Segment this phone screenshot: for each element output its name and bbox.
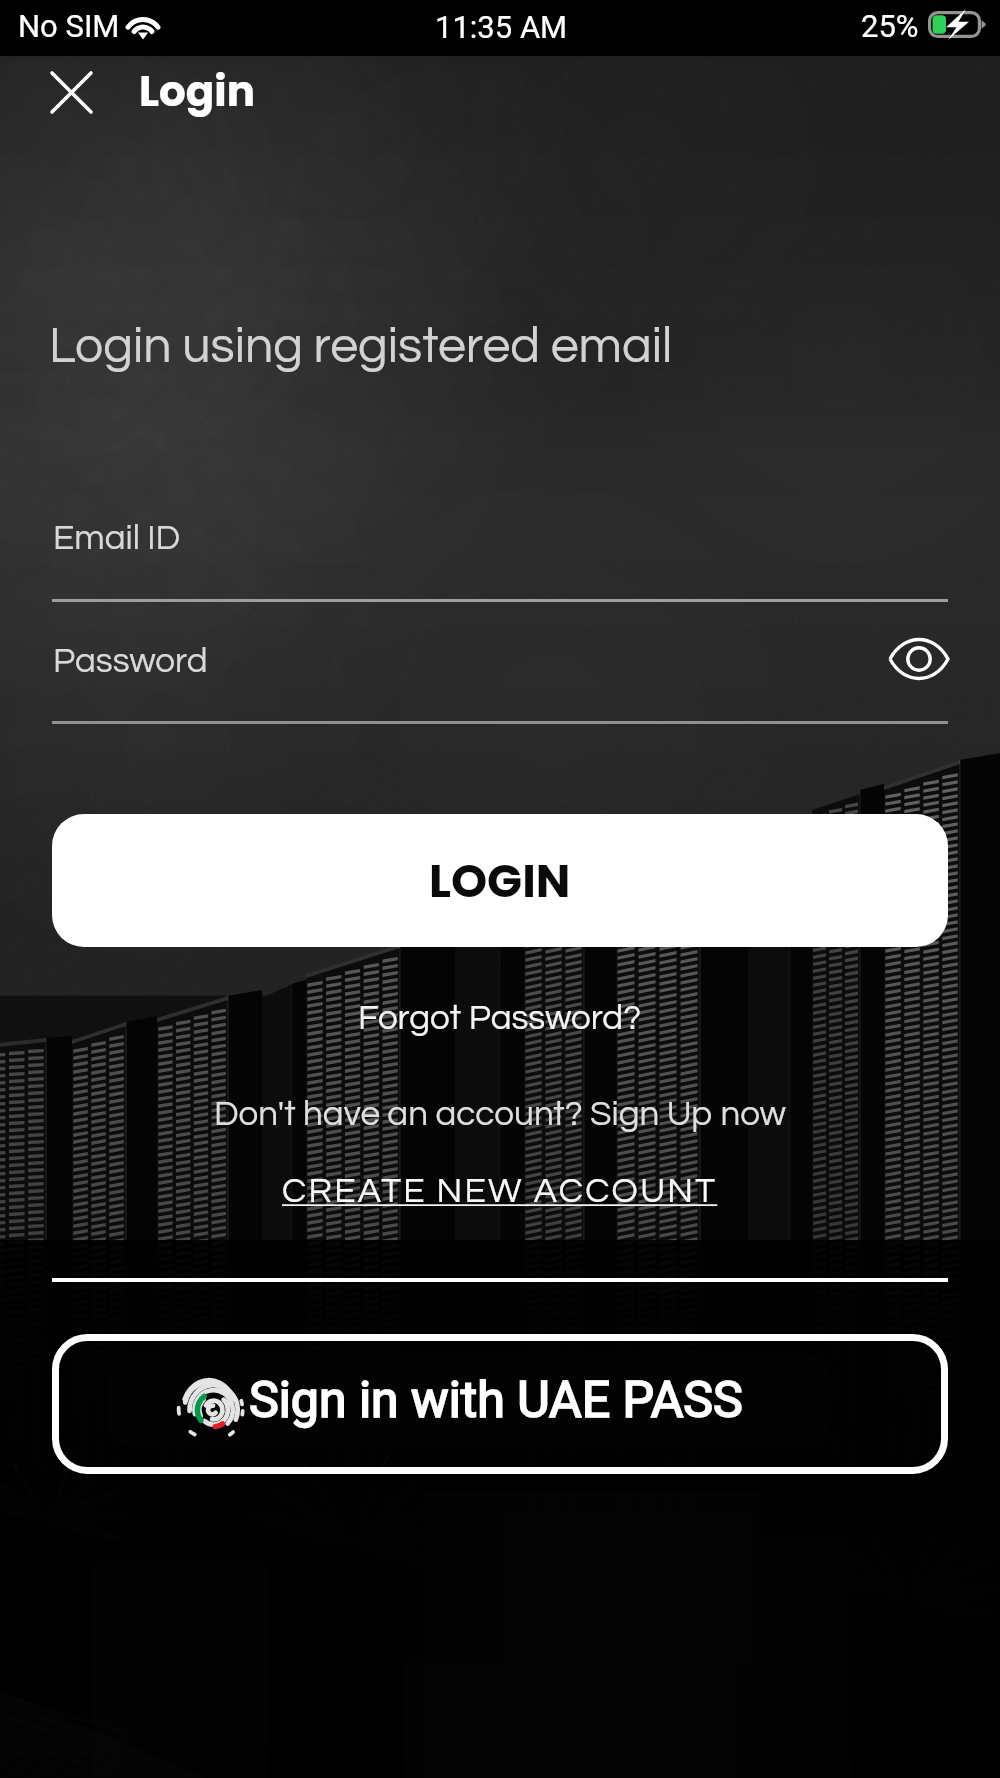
staticText: Don't have an account? Sign Up now	[214, 1096, 786, 1132]
staticText: Sign in with UAE PASS	[249, 1371, 743, 1430]
staticText: Login using registered email	[49, 321, 673, 373]
button[interactable]: CREATE NEW ACCOUNT	[272, 1169, 728, 1213]
staticText: Password	[53, 643, 208, 679]
button[interactable]: LOGIN	[52, 814, 948, 947]
staticText: Email ID	[53, 520, 181, 556]
staticText: 25%	[861, 8, 919, 44]
staticText: 11:35 AM	[435, 9, 568, 45]
staticText: No SIM	[18, 8, 120, 44]
button[interactable]: Close	[31, 52, 111, 132]
button[interactable]: Forgot Password?	[344, 994, 656, 1042]
button[interactable]: Sign in with UAE PASS	[52, 1334, 948, 1474]
button[interactable]: Show password	[889, 637, 949, 681]
staticText: Login	[139, 62, 256, 121]
staticText: LOGIN	[429, 849, 571, 913]
